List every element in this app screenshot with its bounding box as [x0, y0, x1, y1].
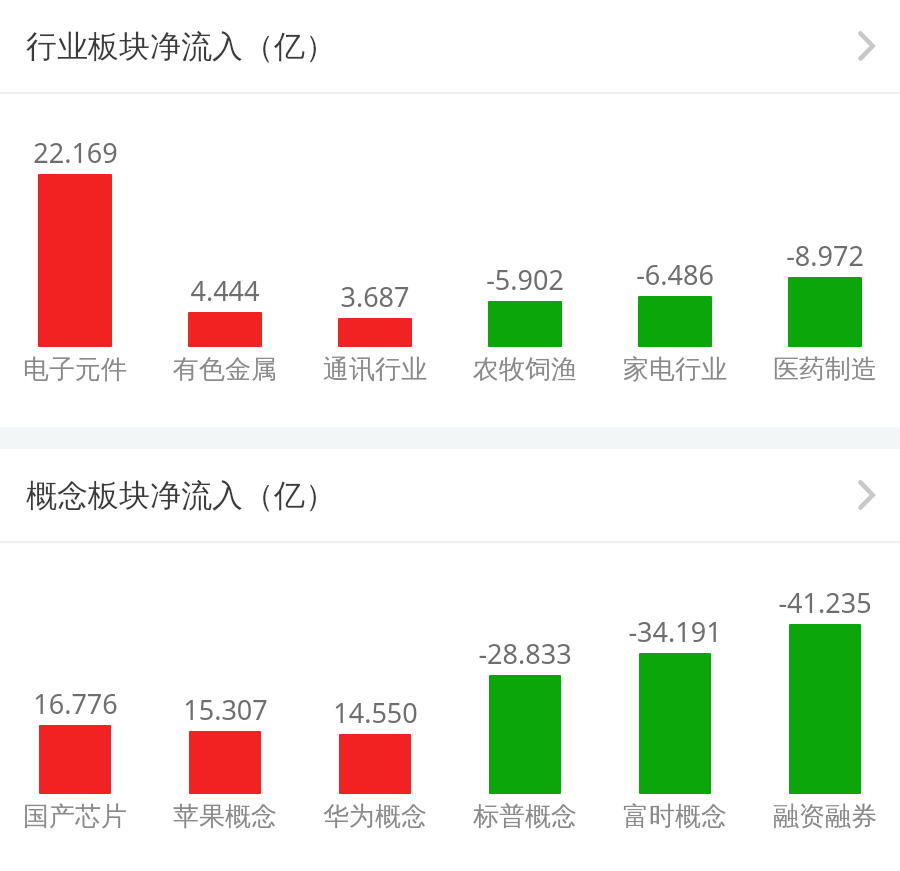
staticText: 14.550 [333, 694, 418, 728]
staticText: -34.191 [628, 613, 722, 647]
button[interactable]: 概念板块净流入（亿） [0, 449, 900, 541]
staticText: 国产芯片 [23, 800, 127, 833]
staticText: 15.307 [183, 691, 268, 725]
other: More [858, 480, 874, 510]
other: More [858, 31, 874, 61]
staticText: -5.902 [486, 261, 564, 295]
staticText: 农牧饲渔 [473, 353, 577, 386]
staticText: 通讯行业 [323, 353, 427, 386]
staticText: 标普概念 [473, 800, 577, 833]
staticText: 融资融券 [773, 800, 877, 833]
staticText: 电子元件 [23, 353, 127, 386]
button[interactable]: 行业板块净流入（亿） [0, 0, 900, 92]
staticText: 概念板块净流入（亿） [26, 476, 336, 515]
staticText: -8.972 [786, 237, 864, 271]
staticText: 家电行业 [623, 353, 727, 386]
staticText: 16.776 [33, 685, 118, 719]
staticText: 华为概念 [323, 800, 427, 833]
staticText: 医药制造 [773, 353, 877, 386]
staticText: 富时概念 [623, 800, 727, 833]
staticText: 苹果概念 [173, 800, 277, 833]
staticText: -28.833 [478, 635, 572, 669]
staticText: 有色金属 [173, 353, 277, 386]
staticText: -41.235 [778, 584, 872, 618]
staticText: -6.486 [636, 256, 714, 290]
staticText: 22.169 [33, 134, 118, 168]
staticText: 3.687 [340, 278, 410, 312]
staticText: 行业板块净流入（亿） [26, 27, 336, 66]
staticText: 4.444 [190, 272, 260, 306]
